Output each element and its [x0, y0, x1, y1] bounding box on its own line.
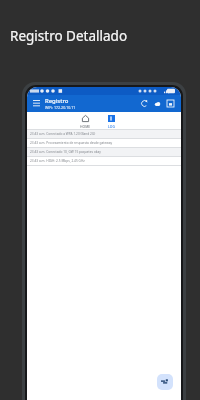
button[interactable]: Compose [157, 374, 173, 390]
staticText: 23:43 a.m. HIGH: 2.5 Mbps, 2.45 GHz [30, 159, 85, 163]
button[interactable]: LOG [98, 112, 124, 129]
staticText: WiFi: 172.20.10.11 [45, 105, 76, 110]
staticText: Registro Detallado [10, 27, 128, 45]
staticText: 23:43 a.m. Procesamiento de respuesta de… [30, 141, 113, 145]
button[interactable]: Save [164, 97, 177, 110]
button[interactable]: Open navigation menu [31, 98, 42, 109]
button[interactable]: 23:43 a.m. Conectado a WPA 1.20 (Band 2G… [27, 130, 181, 138]
button[interactable]: 23:43 a.m. Conectado 10, GW 15 paquetes … [27, 148, 181, 156]
staticText: LOG [108, 124, 115, 129]
button[interactable]: HOME [72, 112, 98, 129]
button[interactable]: Refresh [138, 97, 151, 110]
staticText: Registro [45, 97, 69, 105]
button[interactable]: 23:43 a.m. Procesamiento de respuesta de… [27, 139, 181, 147]
staticText: HOME [80, 124, 91, 129]
staticText: 23:43 a.m. Conectado a WPA 1.20 (Band 2G… [30, 132, 96, 136]
button[interactable]: Cloud upload [151, 97, 164, 110]
button[interactable]: 23:43 a.m. HIGH: 2.5 Mbps, 2.45 GHz [27, 157, 181, 165]
staticText: 23:43 a.m. Conectado 10, GW 15 paquetes … [30, 150, 101, 154]
